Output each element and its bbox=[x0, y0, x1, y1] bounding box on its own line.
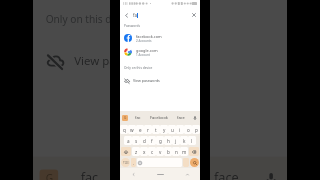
staticText: d bbox=[143, 138, 146, 144]
staticText: j bbox=[175, 138, 177, 144]
staticText: q bbox=[123, 127, 126, 133]
button[interactable]: Voice input bbox=[262, 169, 281, 180]
button[interactable]: View passwords bbox=[120, 74, 200, 86]
staticText: n bbox=[175, 149, 178, 155]
button[interactable]: g bbox=[156, 136, 164, 145]
staticText: e bbox=[139, 127, 142, 133]
button[interactable]: s bbox=[132, 136, 140, 145]
button[interactable]: fac bbox=[81, 169, 100, 180]
button[interactable]: o bbox=[184, 125, 192, 134]
staticText: Only on this device bbox=[124, 66, 153, 70]
button[interactable]: Symbols bbox=[121, 158, 130, 167]
button[interactable]: w bbox=[128, 125, 136, 134]
staticText: f bbox=[151, 138, 153, 144]
staticText: t bbox=[155, 127, 157, 133]
button[interactable]: z bbox=[132, 147, 140, 156]
button[interactable]: facebook.com bbox=[120, 31, 200, 45]
button[interactable]: a bbox=[124, 136, 132, 145]
button[interactable]: d bbox=[140, 136, 148, 145]
staticText: google.com bbox=[136, 48, 158, 53]
button[interactable]: Back bbox=[120, 8, 200, 22]
button[interactable]: Recents bbox=[182, 169, 192, 179]
staticText: a bbox=[127, 138, 130, 144]
button[interactable]: Backspace bbox=[189, 147, 199, 156]
button[interactable]: Home bbox=[155, 169, 165, 179]
button[interactable]: Back bbox=[120, 8, 133, 22]
staticText: fa bbox=[133, 12, 137, 18]
button[interactable]: v bbox=[156, 147, 164, 156]
button[interactable]: Facebook bbox=[150, 115, 168, 120]
button[interactable]: i bbox=[176, 125, 184, 134]
button[interactable]: c bbox=[148, 147, 156, 156]
staticText: o bbox=[187, 127, 190, 133]
button[interactable]: q bbox=[120, 125, 128, 134]
staticText: r bbox=[147, 127, 149, 133]
button[interactable]: f bbox=[148, 136, 156, 145]
staticText: u bbox=[171, 127, 174, 133]
button[interactable]: Voice input bbox=[192, 115, 198, 121]
staticText: facebook.com bbox=[136, 34, 162, 39]
staticText: m bbox=[182, 149, 187, 155]
staticText: y bbox=[163, 127, 166, 133]
button[interactable]: n bbox=[172, 147, 180, 156]
button[interactable]: Period bbox=[183, 158, 189, 167]
button[interactable]: Facebook bbox=[128, 169, 185, 180]
staticText: ?123 bbox=[123, 161, 129, 165]
button[interactable]: e bbox=[136, 125, 144, 134]
staticText: G bbox=[124, 116, 127, 120]
button[interactable]: b bbox=[164, 147, 172, 156]
staticText: View passwords bbox=[74, 52, 160, 68]
button[interactable]: Shift bbox=[121, 147, 131, 156]
staticText: b bbox=[167, 149, 170, 155]
staticText: G bbox=[46, 172, 55, 180]
button[interactable]: Search bbox=[190, 158, 199, 167]
button[interactable]: fac bbox=[135, 115, 141, 120]
button[interactable]: h bbox=[164, 136, 172, 145]
button[interactable]: l bbox=[188, 136, 196, 145]
button[interactable]: Clear search bbox=[188, 8, 200, 22]
staticText: 2 Accounts bbox=[136, 39, 152, 43]
button[interactable]: google.com bbox=[120, 45, 200, 59]
staticText: Only on this device bbox=[46, 14, 138, 26]
staticText: c bbox=[151, 149, 154, 155]
button[interactable]: face bbox=[177, 115, 185, 120]
staticText: h bbox=[167, 138, 170, 144]
button[interactable]: View passwords bbox=[33, 39, 287, 77]
staticText: g bbox=[159, 138, 162, 144]
staticText: z bbox=[135, 149, 138, 155]
button[interactable]: x bbox=[140, 147, 148, 156]
staticText: v bbox=[159, 149, 162, 155]
staticText: View passwords bbox=[133, 78, 160, 83]
staticText: x bbox=[143, 149, 146, 155]
button[interactable]: t bbox=[152, 125, 160, 134]
staticText: , bbox=[133, 160, 134, 165]
button[interactable]: k bbox=[180, 136, 188, 145]
button[interactable]: Translate bbox=[39, 169, 58, 180]
staticText: 1 Account bbox=[136, 53, 150, 57]
button[interactable]: Back bbox=[128, 169, 138, 179]
staticText: Passwords bbox=[124, 24, 140, 28]
button[interactable]: j bbox=[172, 136, 180, 145]
staticText: i bbox=[179, 127, 181, 133]
staticText: w bbox=[130, 127, 134, 133]
staticText: p bbox=[195, 127, 198, 133]
button[interactable]: face bbox=[214, 169, 239, 180]
button[interactable]: p bbox=[192, 125, 200, 134]
button[interactable]: Translate bbox=[122, 115, 128, 121]
button[interactable]: u bbox=[168, 125, 176, 134]
staticText: s bbox=[135, 138, 138, 144]
staticText: l bbox=[191, 138, 193, 144]
button[interactable]: y bbox=[160, 125, 168, 134]
button[interactable]: r bbox=[144, 125, 152, 134]
button[interactable]: Comma bbox=[131, 158, 136, 167]
button[interactable]: m bbox=[180, 147, 188, 156]
button[interactable]: Space bbox=[137, 158, 182, 167]
staticText: k bbox=[183, 138, 186, 144]
